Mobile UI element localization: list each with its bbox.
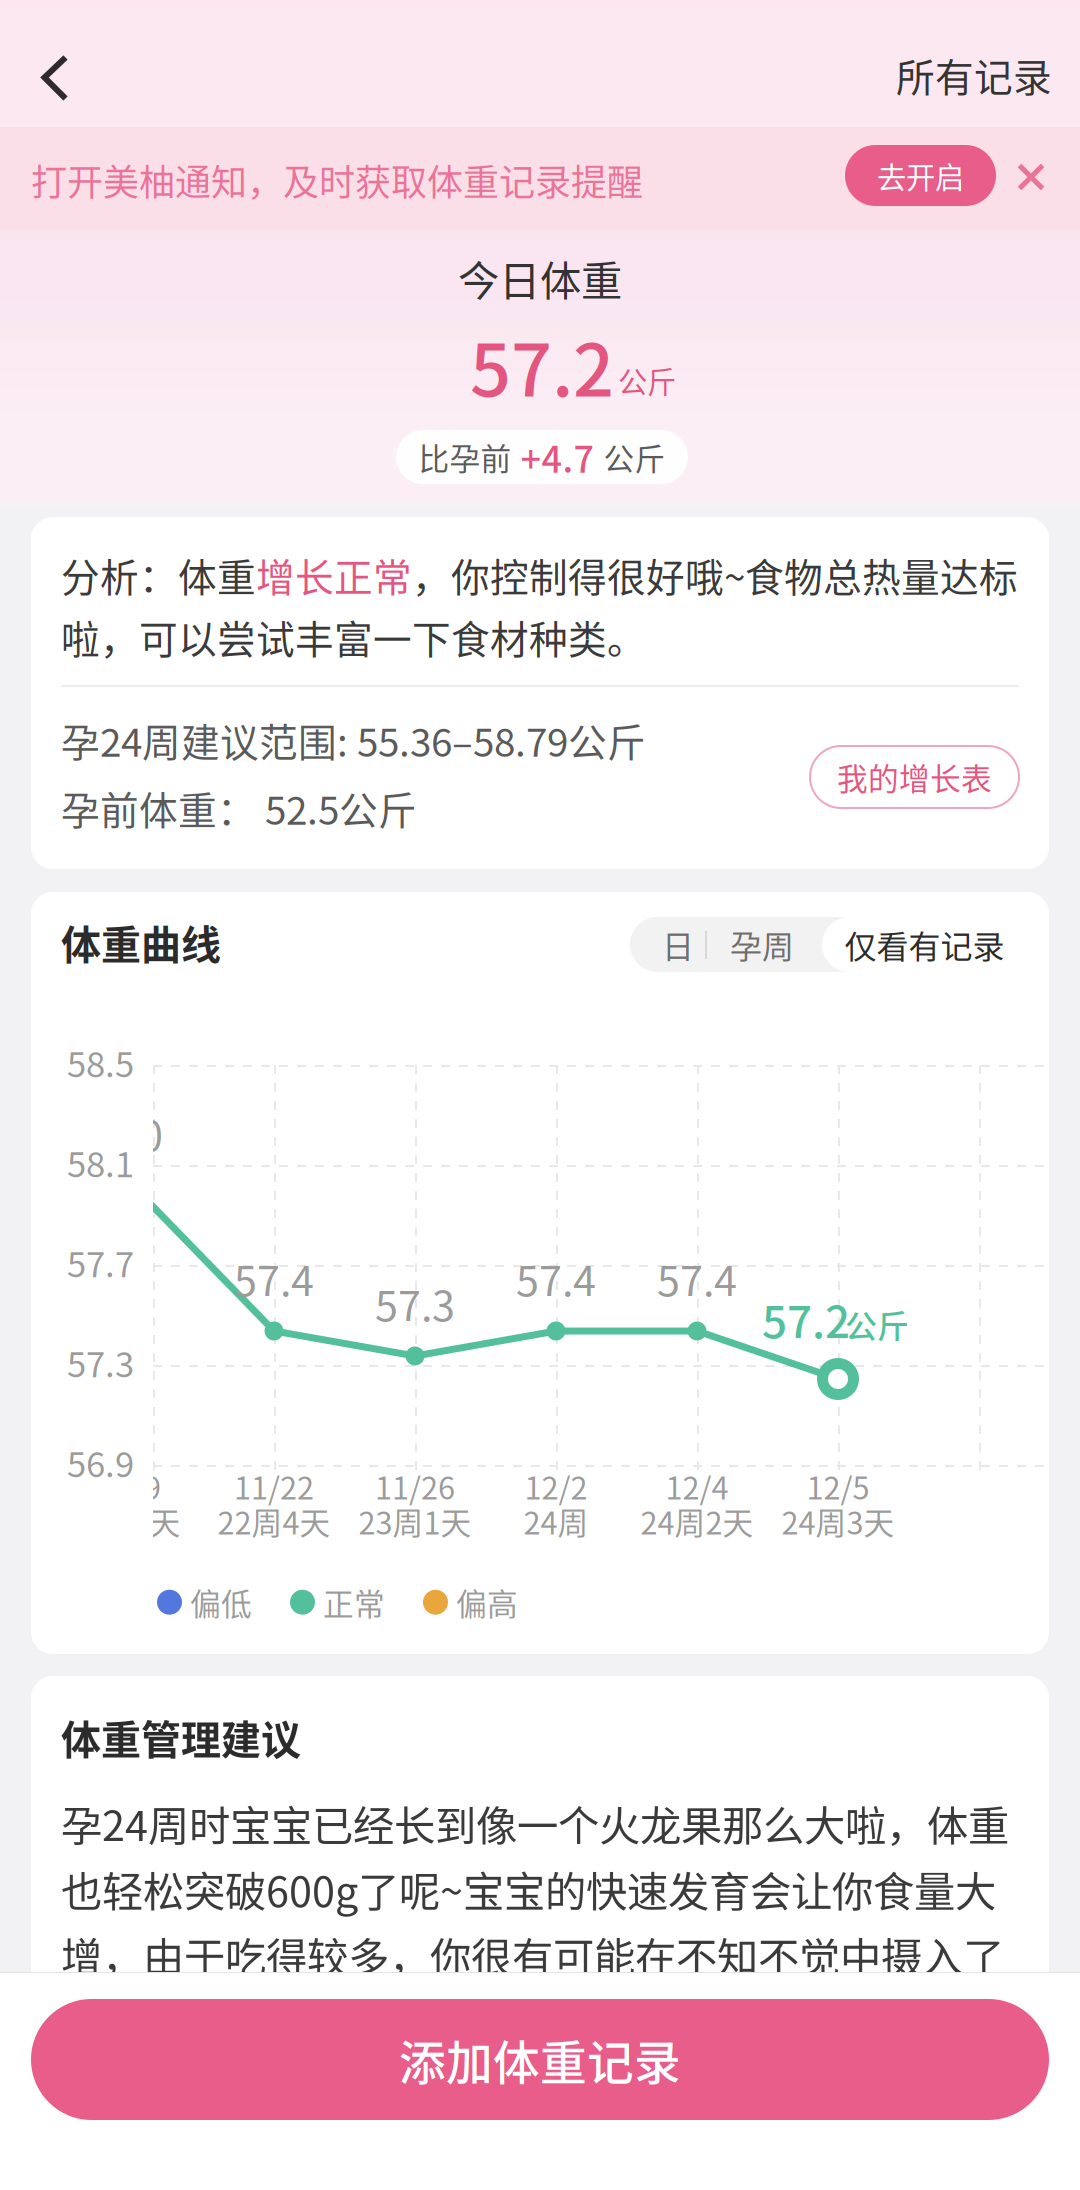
staticText: 21周5天	[67, 1499, 180, 1543]
staticText: 孕24周时宝宝已经长到像一个火龙果那么大啦，体重也轻松突破600g了呢~宝宝的快…	[61, 1793, 1009, 2050]
button[interactable]: Close	[999, 145, 1063, 209]
button[interactable]: 日	[650, 917, 706, 972]
staticText: 去开启	[877, 154, 964, 197]
staticText: 孕周	[730, 921, 794, 968]
staticText: 添加体重记录	[399, 2026, 681, 2093]
staticText: 公斤	[603, 435, 665, 479]
staticText: 体重管理建议	[61, 1708, 301, 1766]
staticText: 58.1	[67, 1137, 134, 1187]
staticText: 24周	[523, 1499, 588, 1543]
staticText: 24周2天	[640, 1499, 753, 1543]
staticText: 正常	[323, 1580, 385, 1624]
staticText: 体重曲线	[61, 913, 221, 971]
staticText: 日	[662, 921, 694, 968]
staticText: 12/2	[524, 1464, 587, 1508]
staticText: 公斤	[845, 1301, 909, 1347]
staticText: 所有记录	[896, 47, 1052, 103]
staticText: 57.3	[375, 1273, 455, 1333]
staticText: 57.2	[470, 313, 614, 417]
staticText: 12/5	[806, 1464, 869, 1508]
staticText: 23周1天	[358, 1499, 471, 1543]
staticText: 58.5	[67, 1037, 134, 1087]
staticText: 11/22	[234, 1464, 314, 1508]
staticText: 57.7	[67, 1237, 134, 1287]
staticText: 24周3天	[781, 1499, 894, 1543]
button[interactable]: 我的增长表	[810, 746, 1019, 808]
staticText: 分析：体重增长正常，你控制得很好哦~食物总热量达标啦，可以尝试丰富一下食材种类。	[61, 547, 1018, 665]
staticText: 11/19	[81, 1464, 161, 1508]
staticText: 57.4	[516, 1248, 596, 1308]
staticText: 11/26	[375, 1464, 455, 1508]
staticText: 57.2	[762, 1287, 850, 1351]
staticText: 仅看有记录	[844, 921, 1004, 968]
staticText: 我的增长表	[837, 755, 992, 799]
staticText: 公斤	[618, 359, 676, 401]
staticText: 22周4天	[217, 1499, 330, 1543]
staticText: 打开美柚通知，及时获取体重记录提醒	[31, 154, 643, 206]
staticText: 57.4	[234, 1248, 314, 1308]
staticText: 偏低	[190, 1580, 252, 1624]
button[interactable]: 仅看有记录	[822, 917, 1027, 972]
staticText: 57.3	[67, 1337, 134, 1387]
staticText: 57.4	[657, 1248, 737, 1308]
staticText: 孕前体重： 52.5公斤	[61, 780, 417, 836]
staticText: 孕24周建议范围: 55.36–58.79公斤	[61, 712, 646, 768]
staticText: 偏高	[456, 1580, 518, 1624]
staticText: 58.0	[83, 1103, 163, 1163]
staticText: 56.9	[67, 1437, 134, 1487]
button[interactable]: 孕周	[718, 917, 806, 972]
staticText: 今日体重	[458, 248, 622, 308]
staticText: +4.7	[520, 431, 594, 483]
button[interactable]: 所有记录	[862, 35, 1052, 115]
button[interactable]: 添加体重记录	[31, 1999, 1049, 2120]
button[interactable]: 去开启	[845, 145, 996, 206]
staticText: 比孕前	[418, 435, 511, 479]
button[interactable]: Back	[7, 28, 103, 128]
staticText: 12/4	[665, 1464, 728, 1508]
